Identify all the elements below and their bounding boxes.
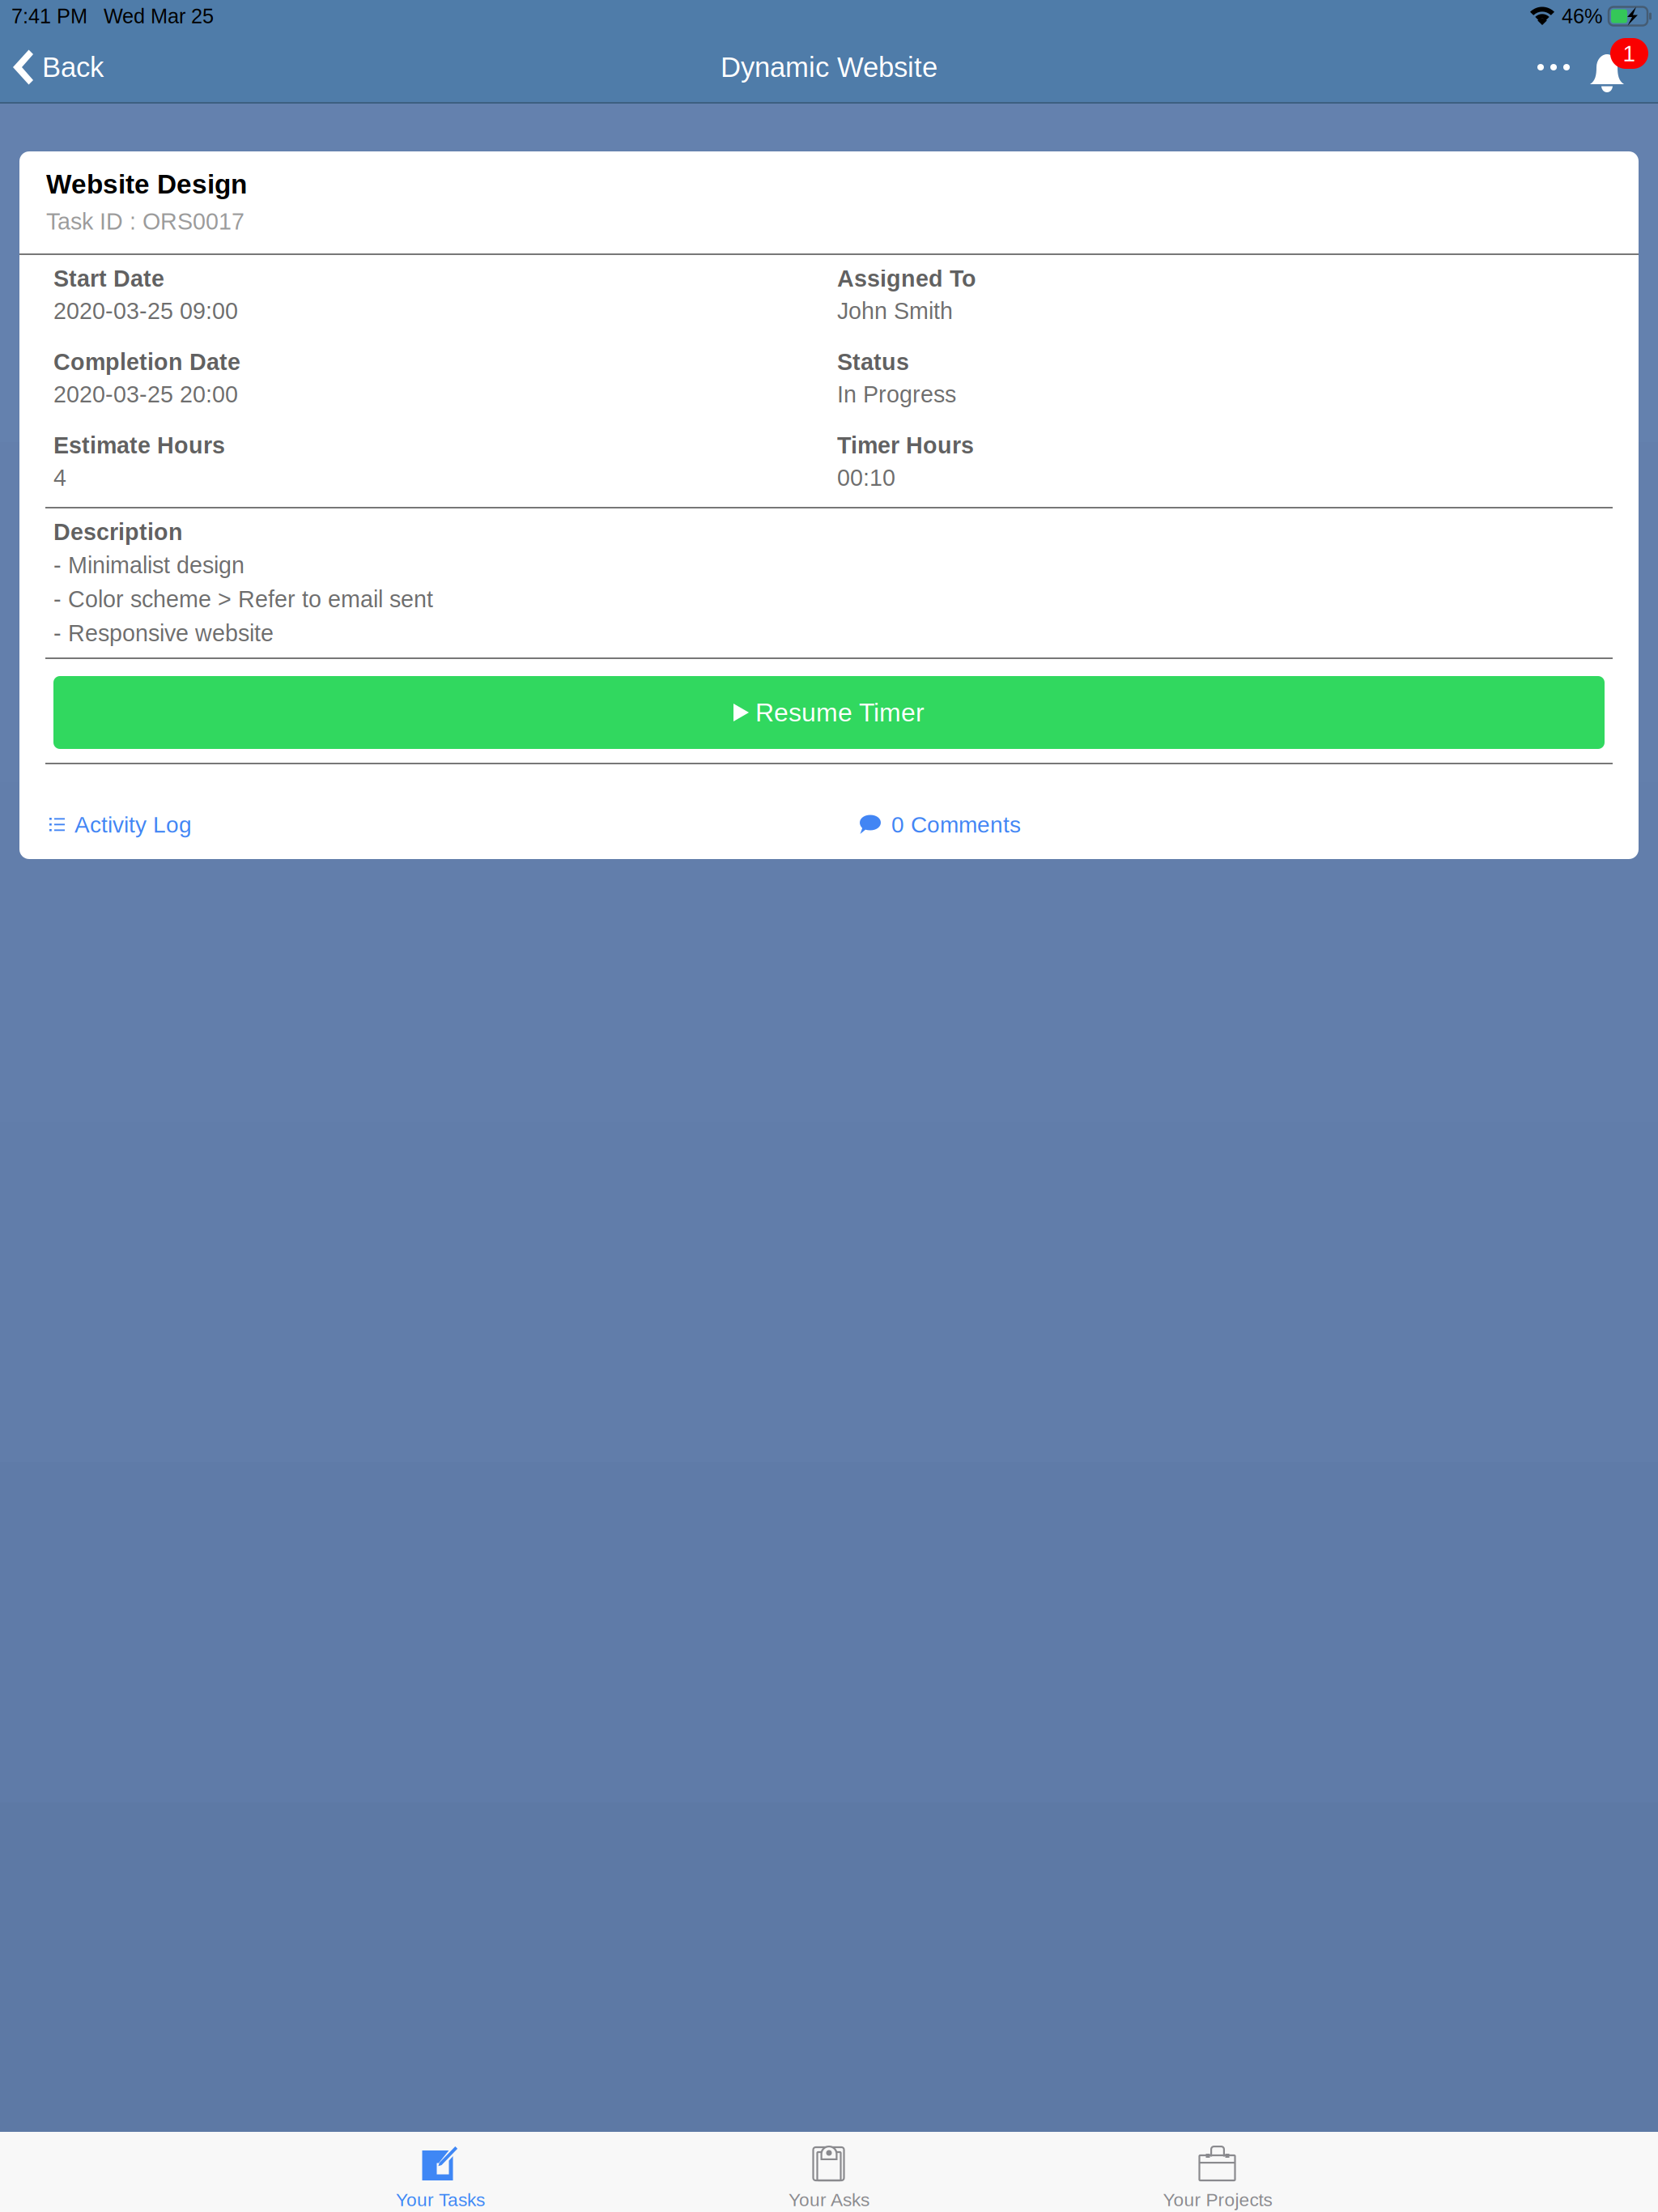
staticText: Task ID : ORS0017 bbox=[46, 208, 244, 234]
staticText: - Color scheme > Refer to email sent bbox=[53, 586, 433, 612]
button[interactable]: Your Asks bbox=[708, 2132, 950, 2212]
button[interactable]: Notifications bbox=[1590, 38, 1648, 91]
staticText: Activity Log bbox=[74, 812, 192, 837]
button[interactable]: 0 Comments bbox=[860, 812, 1613, 837]
staticText: Resume Timer bbox=[755, 698, 925, 727]
button[interactable]: Your Projects bbox=[1096, 2132, 1339, 2212]
staticText: In Progress bbox=[837, 381, 956, 407]
staticText: 46% bbox=[1562, 5, 1603, 28]
staticText: - Responsive website bbox=[53, 620, 274, 646]
staticText: Wed Mar 25 bbox=[104, 5, 214, 28]
button[interactable]: Activity Log bbox=[45, 812, 860, 837]
staticText: Website Design bbox=[46, 169, 247, 199]
staticText: 2020-03-25 09:00 bbox=[53, 298, 238, 324]
staticText: 2020-03-25 20:00 bbox=[53, 381, 238, 407]
staticText: Estimate Hours bbox=[53, 432, 225, 458]
button[interactable]: More options bbox=[1537, 48, 1570, 87]
staticText: Your Asks bbox=[789, 2190, 869, 2210]
button[interactable]: Back bbox=[0, 37, 115, 97]
staticText: Assigned To bbox=[837, 266, 976, 291]
staticText: 4 bbox=[53, 465, 66, 491]
staticText: 0 Comments bbox=[891, 812, 1021, 837]
button[interactable]: Your Tasks bbox=[319, 2132, 562, 2212]
staticText: Description bbox=[53, 519, 183, 545]
staticText: Completion Date bbox=[53, 349, 240, 375]
staticText: 00:10 bbox=[837, 465, 895, 491]
staticText: John Smith bbox=[837, 298, 953, 324]
staticText: Status bbox=[837, 349, 909, 375]
staticText: Timer Hours bbox=[837, 432, 974, 458]
staticText: Dynamic Website bbox=[721, 51, 937, 83]
staticText: 7:41 PM bbox=[11, 5, 87, 28]
staticText: 1 bbox=[1623, 41, 1636, 66]
staticText: Start Date bbox=[53, 266, 164, 291]
staticText: Back bbox=[42, 51, 104, 83]
button[interactable]: Resume Timer bbox=[53, 676, 1605, 749]
staticText: - Minimalist design bbox=[53, 552, 244, 578]
staticText: Your Projects bbox=[1163, 2190, 1272, 2210]
staticText: Your Tasks bbox=[396, 2190, 485, 2210]
